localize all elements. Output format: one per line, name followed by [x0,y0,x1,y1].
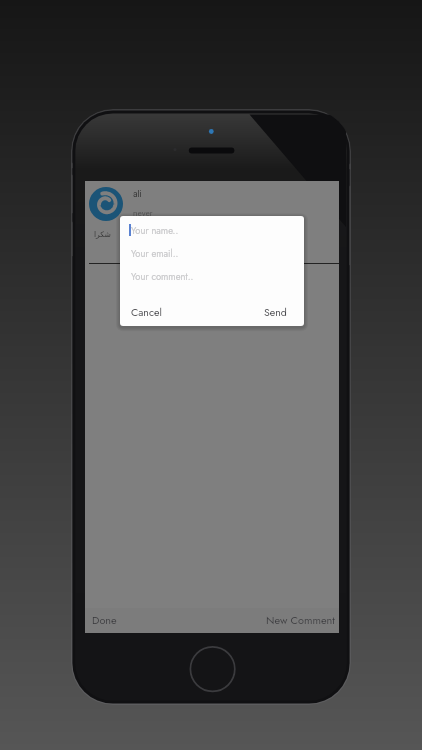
button[interactable]: Your email.. [131,247,179,261]
staticText: شكرا [94,230,111,239]
button[interactable]: Your comment.. [131,270,194,284]
button[interactable]: Send [254,297,304,326]
staticText: Cancel [131,305,162,320]
staticText: ali [133,189,142,199]
button[interactable]: Done [85,608,125,632]
button[interactable]: Cancel [120,297,172,326]
staticText: Send [264,305,287,320]
staticText: Done [92,612,117,628]
staticText: New Comment [266,612,335,628]
button[interactable]: New Comment [258,608,339,632]
staticText: never [133,208,153,217]
button[interactable]: Your name.. [131,224,179,238]
